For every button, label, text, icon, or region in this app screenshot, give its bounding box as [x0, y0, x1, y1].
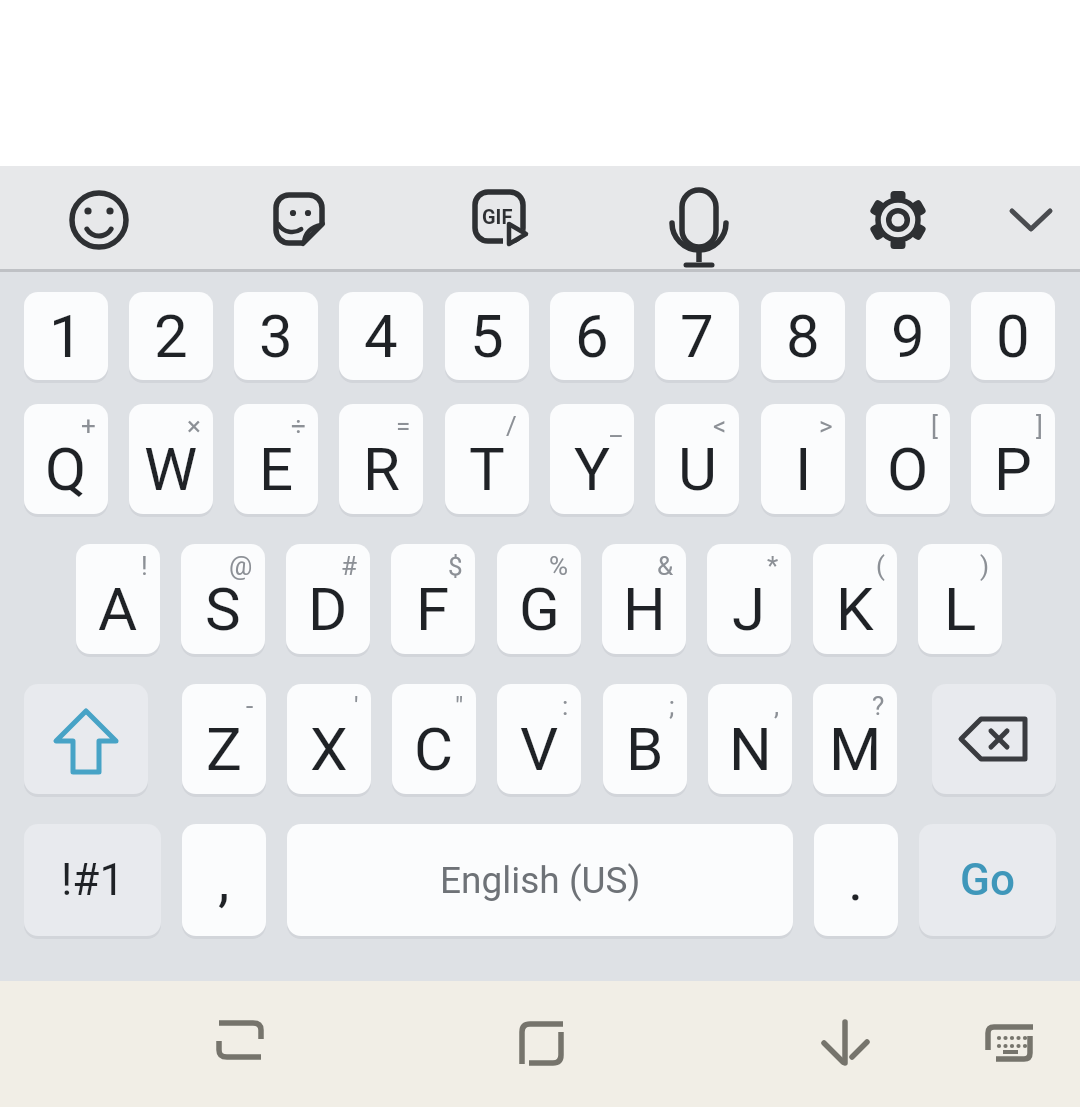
staticText: A: [98, 574, 138, 644]
staticText: C: [414, 714, 454, 784]
staticText: N: [729, 714, 772, 784]
button[interactable]: B: [603, 684, 687, 794]
button[interactable]: F: [391, 544, 475, 654]
button[interactable]: [863, 185, 933, 255]
staticText: O: [887, 434, 929, 504]
staticText: L: [944, 574, 977, 644]
button[interactable]: [464, 185, 534, 255]
button[interactable]: [24, 684, 148, 794]
button[interactable]: [64, 185, 134, 255]
staticText: Y: [574, 434, 611, 504]
staticText: ): [980, 551, 990, 581]
staticText: U: [678, 434, 717, 504]
button[interactable]: E: [234, 404, 318, 514]
button[interactable]: N: [708, 684, 792, 794]
staticText: =: [396, 411, 411, 441]
staticText: Z: [206, 714, 242, 784]
button[interactable]: A: [76, 544, 160, 654]
button[interactable]: 0: [971, 292, 1055, 380]
button[interactable]: English (US): [287, 824, 793, 936]
button[interactable]: T: [445, 404, 529, 514]
button[interactable]: [264, 185, 334, 255]
staticText: &: [657, 551, 674, 581]
button[interactable]: [190, 993, 290, 1093]
button[interactable]: Y: [550, 404, 634, 514]
staticText: ÷: [291, 411, 306, 441]
button[interactable]: 2: [129, 292, 213, 380]
button[interactable]: O: [866, 404, 950, 514]
staticText: ?: [872, 691, 885, 721]
button[interactable]: 7: [655, 292, 739, 380]
staticText: 3: [259, 301, 293, 371]
button[interactable]: Go: [919, 824, 1056, 936]
staticText: 1: [49, 301, 83, 371]
staticText: _: [610, 411, 622, 441]
button[interactable]: C: [392, 684, 476, 794]
staticText: X: [310, 714, 348, 784]
staticText: [: [931, 411, 938, 441]
button[interactable]: L: [918, 544, 1002, 654]
staticText: !#1: [61, 854, 125, 906]
staticText: :: [562, 691, 569, 721]
button[interactable]: W: [129, 404, 213, 514]
button[interactable]: R: [339, 404, 423, 514]
button[interactable]: 4: [339, 292, 423, 380]
button[interactable]: I: [761, 404, 845, 514]
button[interactable]: G: [497, 544, 581, 654]
button[interactable]: P: [971, 404, 1055, 514]
staticText: B: [626, 714, 664, 784]
button[interactable]: X: [287, 684, 371, 794]
button[interactable]: K: [813, 544, 897, 654]
button[interactable]: ,: [182, 824, 266, 936]
staticText: I: [795, 434, 812, 504]
button[interactable]: [959, 993, 1059, 1093]
button[interactable]: J: [707, 544, 791, 654]
button[interactable]: H: [602, 544, 686, 654]
staticText: #: [341, 551, 358, 581]
button[interactable]: V: [497, 684, 581, 794]
staticText: GIF: [482, 205, 513, 228]
button[interactable]: [664, 185, 734, 255]
staticText: @: [229, 551, 253, 581]
staticText: 2: [154, 301, 188, 371]
button[interactable]: [492, 993, 592, 1093]
button[interactable]: Q: [24, 404, 108, 514]
staticText: V: [520, 714, 559, 784]
button[interactable]: M: [813, 684, 897, 794]
staticText: English (US): [440, 859, 641, 902]
staticText: !: [141, 551, 148, 581]
button[interactable]: D: [286, 544, 370, 654]
staticText: ;: [669, 691, 675, 721]
button[interactable]: !#1: [24, 824, 161, 936]
button[interactable]: 5: [445, 292, 529, 380]
button[interactable]: [932, 684, 1056, 794]
staticText: ,: [774, 691, 780, 721]
staticText: F: [416, 574, 450, 644]
button[interactable]: U: [655, 404, 739, 514]
staticText: S: [205, 574, 241, 644]
staticText: ': [354, 691, 359, 721]
staticText: 0: [996, 301, 1030, 371]
staticText: *: [767, 551, 779, 581]
button[interactable]: 3: [234, 292, 318, 380]
staticText: <: [713, 411, 727, 441]
staticText: ,: [218, 846, 230, 914]
staticText: 7: [680, 301, 714, 371]
button[interactable]: .: [814, 824, 898, 936]
button[interactable]: S: [181, 544, 265, 654]
staticText: G: [519, 574, 560, 644]
staticText: 8: [786, 301, 820, 371]
button[interactable]: [996, 185, 1066, 255]
button[interactable]: 1: [24, 292, 108, 380]
staticText: 6: [575, 301, 609, 371]
staticText: ]: [1036, 411, 1043, 441]
staticText: D: [308, 574, 348, 644]
button[interactable]: 9: [866, 292, 950, 380]
button[interactable]: 8: [761, 292, 845, 380]
staticText: Q: [45, 434, 87, 504]
button[interactable]: [795, 993, 895, 1093]
button[interactable]: Z: [182, 684, 266, 794]
button[interactable]: 6: [550, 292, 634, 380]
staticText: E: [259, 434, 294, 504]
staticText: 5: [470, 301, 504, 371]
